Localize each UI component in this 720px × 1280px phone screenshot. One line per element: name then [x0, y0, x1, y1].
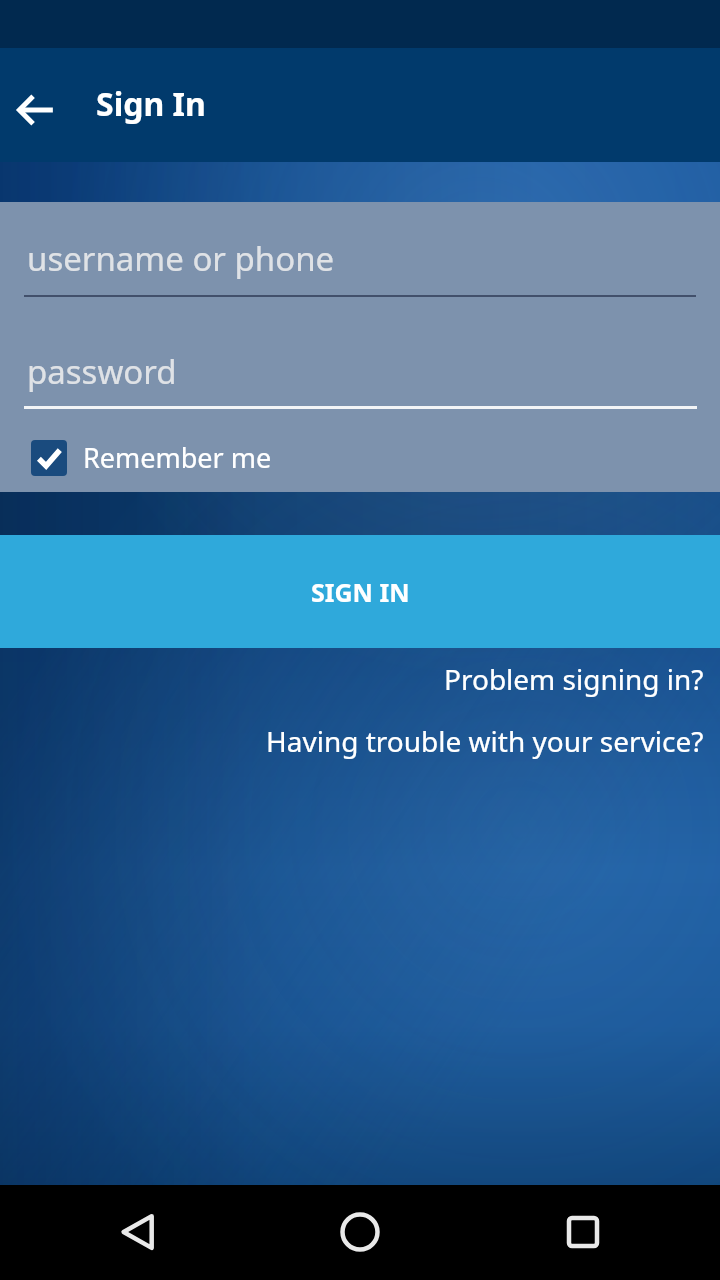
button[interactable]: Having trouble with your service? [266, 722, 704, 760]
button[interactable]: Problem signing in? [444, 660, 704, 698]
button[interactable]: Remember me [31, 439, 272, 476]
staticText: username or phone [27, 236, 335, 281]
staticText: Remember me [83, 439, 272, 476]
button[interactable] [553, 1202, 613, 1262]
staticText: SIGN IN [311, 575, 410, 609]
button[interactable] [108, 1202, 168, 1262]
staticText: Sign In [96, 82, 206, 126]
staticText: password [27, 349, 177, 394]
button[interactable]: SIGN IN [0, 535, 720, 648]
button[interactable] [330, 1202, 390, 1262]
button[interactable] [8, 83, 62, 137]
